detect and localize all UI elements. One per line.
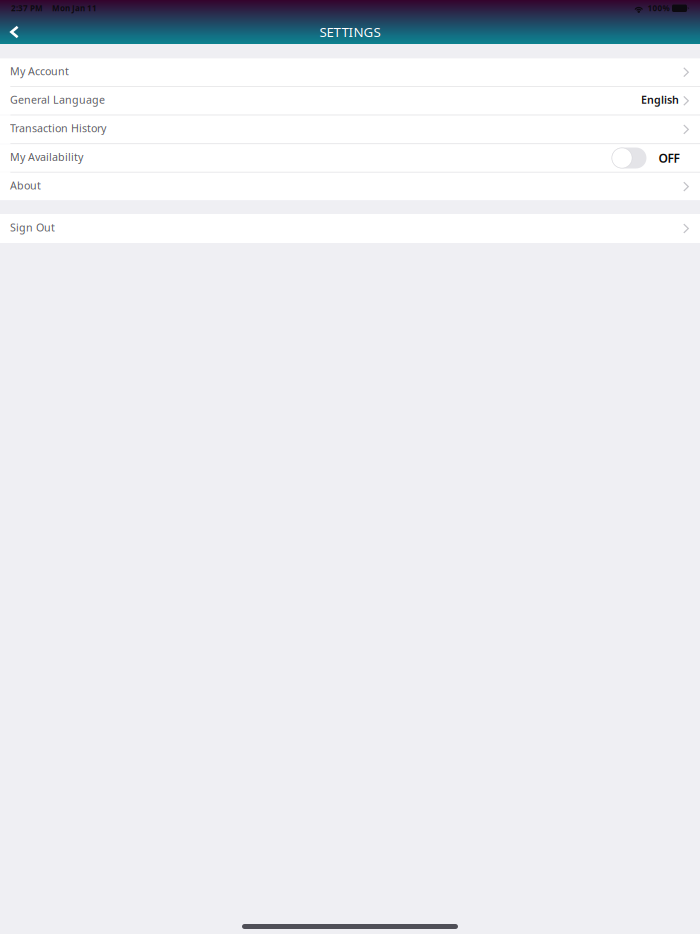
button[interactable]: My Availability toggle, off	[611, 147, 646, 168]
staticText: Mon Jan 11	[52, 3, 97, 13]
staticText: My Account	[10, 64, 69, 78]
button[interactable]: About	[0, 173, 700, 200]
staticText: SETTINGS	[319, 23, 380, 41]
staticText: My Availability	[10, 150, 83, 164]
staticText: Sign Out	[10, 220, 55, 234]
staticText: 2:37 PM	[11, 3, 43, 13]
button[interactable]: My Account	[0, 58, 700, 86]
button[interactable]: Back	[0, 16, 29, 44]
staticText: Transaction History	[10, 121, 106, 135]
staticText: About	[10, 178, 41, 192]
button[interactable]: Sign Out	[0, 214, 700, 243]
button[interactable]: My Availability	[0, 144, 700, 172]
staticText: 100%	[647, 3, 669, 13]
button[interactable]: General Language	[0, 87, 700, 115]
staticText: OFF	[658, 150, 679, 166]
staticText: English	[641, 92, 679, 107]
button[interactable]: Transaction History	[0, 116, 700, 143]
staticText: General Language	[10, 92, 105, 107]
